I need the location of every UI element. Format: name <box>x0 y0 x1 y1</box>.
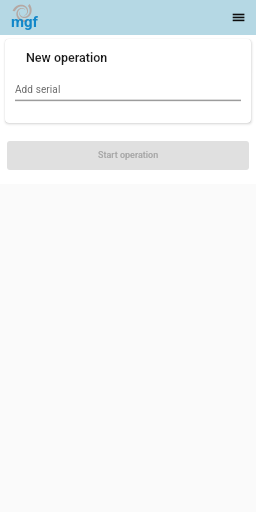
staticText: mgf <box>11 13 38 31</box>
staticText: New operation <box>26 50 108 65</box>
staticText: Start operation <box>98 150 159 161</box>
staticText: Add serial <box>15 84 61 96</box>
button[interactable]: Start operation <box>7 141 249 170</box>
button[interactable]: Open navigation menu <box>228 0 256 30</box>
